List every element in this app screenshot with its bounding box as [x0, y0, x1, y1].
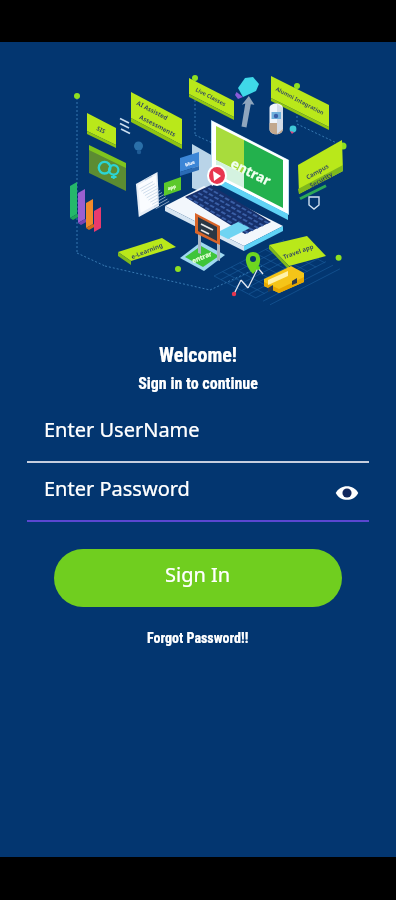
staticText: Sign In [165, 561, 231, 588]
button[interactable]: Enter Password [27, 467, 369, 520]
button[interactable]: Sign In [54, 549, 342, 607]
button[interactable]: Show password [332, 478, 362, 508]
button[interactable]: Forgot Password!! [141, 627, 255, 649]
staticText: Enter Password [44, 475, 190, 502]
staticText: Welcome! [0, 343, 396, 366]
button[interactable]: Enter UserName [27, 408, 369, 461]
staticText: Forgot Password!! [147, 630, 249, 646]
staticText: Sign in to continue [0, 374, 396, 393]
staticText: Enter UserName [44, 416, 200, 443]
